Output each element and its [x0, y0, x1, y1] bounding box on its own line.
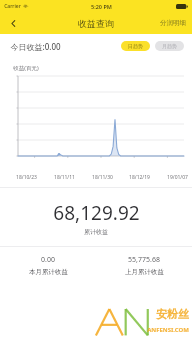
staticText: 分润明细: [160, 19, 186, 27]
staticText: 今日收益:0.00: [10, 41, 61, 52]
button[interactable]: 0.00: [0, 255, 96, 276]
staticText: 5:20 PM: [91, 3, 112, 10]
button[interactable]: 55,775.68: [96, 255, 192, 276]
button[interactable]: 分润明细: [160, 12, 186, 34]
button[interactable]: 日趋势: [121, 41, 150, 51]
staticText: 0.00: [41, 255, 55, 265]
staticText: 安粉丝: [156, 307, 189, 321]
staticText: 收益(百元): [13, 64, 39, 72]
button[interactable]: 月趋势: [155, 41, 184, 51]
staticText: 收益查询: [78, 18, 114, 29]
staticText: 上月累计收益: [125, 268, 164, 276]
staticText: 55,775.68: [128, 255, 160, 265]
staticText: ANFENSI.COM: [147, 326, 189, 334]
staticText: 18/12/19: [129, 174, 150, 181]
staticText: 19/01/07: [167, 174, 188, 181]
button[interactable]: Back: [0, 12, 26, 34]
staticText: 68,129.92: [53, 200, 140, 226]
staticText: 本月累计收益: [29, 268, 68, 276]
staticText: 18/10/23: [16, 174, 37, 181]
staticText: 月趋势: [162, 43, 177, 49]
staticText: 18/11/11: [54, 174, 75, 181]
staticText: 日趋势: [128, 43, 143, 49]
staticText: Carrier: [4, 3, 21, 10]
staticText: 18/11/30: [92, 174, 113, 181]
staticText: 累计收益: [84, 228, 108, 236]
